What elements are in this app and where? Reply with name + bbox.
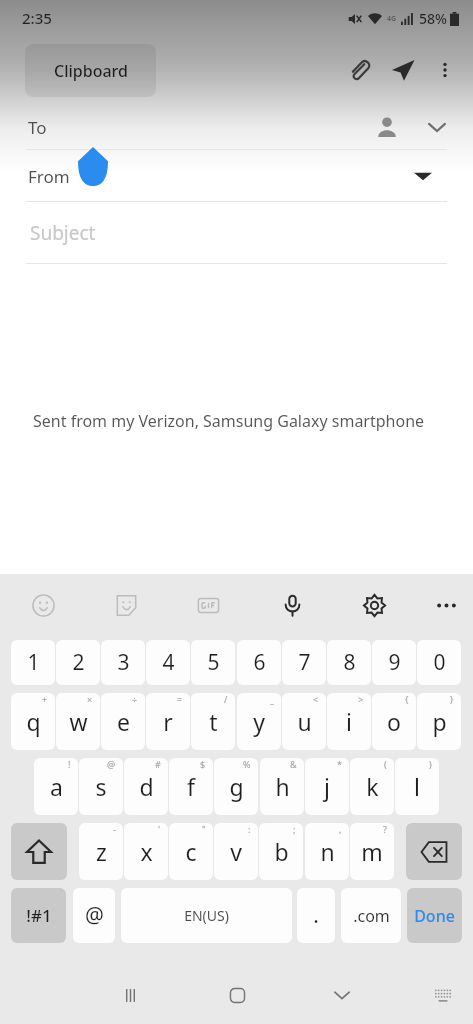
- button[interactable]: @: [73, 888, 115, 943]
- staticText: w: [69, 706, 88, 737]
- button[interactable]: More options: [425, 50, 465, 90]
- button[interactable]: Choose contact: [367, 107, 407, 147]
- button[interactable]: n: [305, 823, 349, 880]
- button[interactable]: x: [124, 823, 168, 880]
- button[interactable]: c: [169, 823, 213, 880]
- staticText: p: [432, 706, 447, 737]
- staticText: v: [230, 836, 242, 867]
- button[interactable]: z: [79, 823, 123, 880]
- staticText: b: [274, 836, 289, 867]
- button[interactable]: Home: [213, 971, 261, 1019]
- button[interactable]: Keyboard settings: [353, 574, 395, 636]
- button[interactable]: Done: [407, 888, 462, 943]
- staticText: s: [95, 771, 107, 802]
- staticText: !#1: [26, 904, 52, 927]
- button[interactable]: h: [260, 758, 304, 815]
- button[interactable]: k: [350, 758, 394, 815]
- staticText: u: [297, 706, 312, 737]
- staticText: ?: [383, 823, 387, 835]
- button[interactable]: m: [350, 823, 394, 880]
- staticText: <: [313, 693, 319, 705]
- staticText: x: [140, 836, 153, 867]
- staticText: *: [337, 758, 342, 770]
- button[interactable]: 9: [372, 640, 416, 685]
- button[interactable]: From: [0, 150, 473, 202]
- button[interactable]: 1: [11, 640, 55, 685]
- staticText: !: [68, 758, 71, 770]
- staticText: 58%: [419, 9, 447, 28]
- button[interactable]: 3: [101, 640, 145, 685]
- button[interactable]: Backspace: [406, 823, 462, 880]
- staticText: @: [85, 901, 104, 930]
- staticText: ): [429, 758, 432, 770]
- button[interactable]: Stickers: [105, 574, 147, 636]
- button[interactable]: Choose sender account: [405, 158, 441, 194]
- button[interactable]: u: [282, 693, 326, 750]
- button[interactable]: s: [79, 758, 123, 815]
- button[interactable]: f: [169, 758, 213, 815]
- button[interactable]: 0: [417, 640, 461, 685]
- button[interactable]: b: [259, 823, 303, 880]
- button[interactable]: Emoji: [22, 574, 64, 636]
- button[interactable]: Expand recipients: [417, 107, 457, 147]
- staticText: 9: [388, 648, 401, 677]
- button[interactable]: Clipboard: [25, 44, 156, 97]
- button[interactable]: !#1: [11, 888, 66, 943]
- button[interactable]: GIF: [187, 574, 229, 636]
- button[interactable]: 4: [146, 640, 190, 685]
- button[interactable]: o: [372, 693, 416, 750]
- staticText: _: [270, 693, 274, 705]
- button[interactable]: a: [34, 758, 78, 815]
- button[interactable]: g: [214, 758, 258, 815]
- staticText: Done: [414, 905, 455, 927]
- staticText: 2:35: [22, 8, 52, 28]
- button[interactable]: 5: [191, 640, 235, 685]
- staticText: a: [50, 771, 63, 802]
- button[interactable]: l: [395, 758, 439, 815]
- button[interactable]: 7: [282, 640, 326, 685]
- button[interactable]: d: [124, 758, 168, 815]
- button[interactable]: 2: [56, 640, 100, 685]
- button[interactable]: 6: [237, 640, 281, 685]
- staticText: 4: [162, 648, 175, 677]
- staticText: (: [384, 758, 387, 770]
- button[interactable]: y: [237, 693, 281, 750]
- button[interactable]: Recent apps: [106, 971, 154, 1019]
- button[interactable]: Hide keyboard: [318, 971, 366, 1019]
- staticText: 6: [253, 648, 266, 677]
- button[interactable]: t: [191, 693, 235, 750]
- button[interactable]: Subject: [0, 202, 473, 264]
- button[interactable]: j: [305, 758, 349, 815]
- button[interactable]: Shift: [11, 823, 67, 880]
- staticText: &: [290, 758, 297, 770]
- staticText: 3: [117, 648, 130, 677]
- staticText: 0: [433, 648, 446, 677]
- button[interactable]: v: [214, 823, 258, 880]
- button[interactable]: Send: [381, 48, 425, 92]
- staticText: ;: [293, 823, 296, 835]
- button[interactable]: To: [0, 104, 473, 150]
- button[interactable]: q: [11, 693, 55, 750]
- button[interactable]: .: [297, 888, 335, 943]
- button[interactable]: w: [56, 693, 100, 750]
- staticText: Sent from my Verizon, Samsung Galaxy sma…: [33, 410, 425, 432]
- staticText: 8: [343, 648, 356, 677]
- button[interactable]: i: [327, 693, 371, 750]
- button[interactable]: r: [146, 693, 190, 750]
- button[interactable]: More options: [425, 574, 467, 636]
- staticText: /: [224, 693, 228, 705]
- staticText: :: [248, 823, 251, 835]
- staticText: c: [185, 836, 197, 867]
- staticText: q: [26, 706, 41, 737]
- staticText: 7: [298, 648, 311, 677]
- button[interactable]: Voice input: [271, 574, 313, 636]
- button[interactable]: 8: [327, 640, 371, 685]
- staticText: i: [346, 706, 352, 737]
- button[interactable]: EN(US): [121, 888, 292, 943]
- staticText: j: [324, 771, 330, 802]
- button[interactable]: Switch keyboard: [421, 973, 465, 1017]
- button[interactable]: Attach file: [337, 48, 381, 92]
- button[interactable]: p: [417, 693, 461, 750]
- button[interactable]: .com: [341, 888, 401, 943]
- button[interactable]: e: [101, 693, 145, 750]
